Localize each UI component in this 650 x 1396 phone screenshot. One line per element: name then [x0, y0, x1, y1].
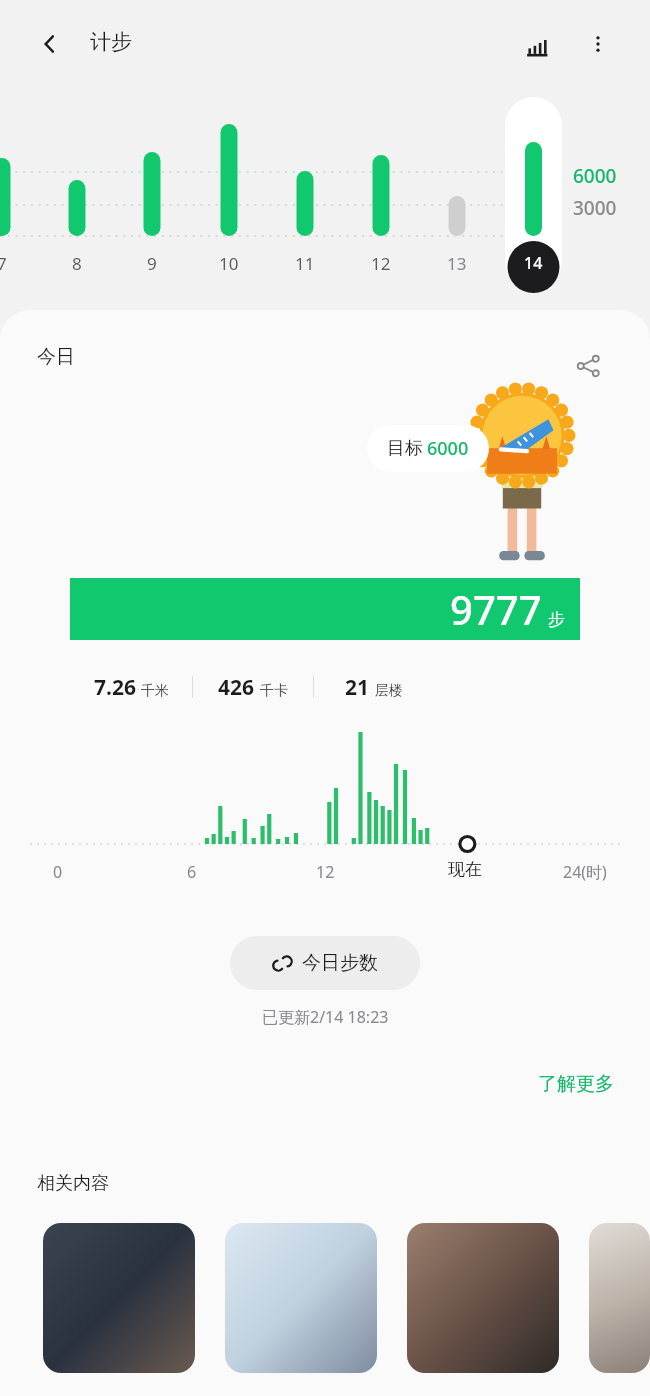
staticText: 14: [524, 252, 543, 274]
button[interactable]: Workout video 4: [589, 1223, 650, 1373]
staticText: 6: [187, 861, 197, 883]
button[interactable]: Trends chart: [513, 20, 561, 68]
staticText: 8: [72, 252, 82, 275]
staticText: 了解更多: [538, 1072, 614, 1096]
button[interactable]: 目标: [367, 425, 489, 472]
staticText: 7.26: [94, 673, 136, 702]
staticText: 12: [371, 252, 391, 275]
staticText: 9777: [450, 582, 542, 636]
staticText: 步: [548, 609, 565, 630]
staticText: 9: [147, 252, 157, 275]
staticText: 24(时): [563, 861, 607, 883]
staticText: 相关内容: [37, 1172, 109, 1195]
button[interactable]: Share: [560, 338, 616, 394]
staticText: 千卡: [260, 682, 288, 700]
staticText: 今日步数: [302, 951, 378, 975]
staticText: 426: [218, 673, 255, 702]
button[interactable]: 9777: [70, 578, 580, 640]
button[interactable]: 了解更多: [502, 1066, 650, 1102]
staticText: 13: [447, 252, 467, 275]
staticText: 10: [219, 252, 239, 275]
staticText: 今日: [37, 345, 75, 369]
staticText: 已更新2/14 18:23: [262, 1006, 389, 1028]
staticText: 3000: [573, 195, 617, 221]
staticText: 12: [316, 861, 335, 883]
staticText: 层楼: [375, 682, 403, 700]
staticText: 6000: [427, 436, 469, 461]
staticText: 计步: [90, 29, 132, 55]
staticText: 7: [0, 252, 7, 275]
staticText: 千米: [141, 682, 169, 700]
staticText: 6000: [573, 163, 617, 189]
button[interactable]: Back: [26, 20, 74, 68]
staticText: 目标: [387, 437, 423, 460]
button[interactable]: Workout video 1: [43, 1223, 195, 1373]
staticText: 21: [345, 673, 370, 702]
button[interactable]: More options: [574, 20, 622, 68]
button[interactable]: Body Blast video: [407, 1223, 559, 1373]
staticText: 0: [53, 861, 63, 883]
button[interactable]: Workout video 2: [225, 1223, 377, 1373]
button[interactable]: 今日步数: [230, 936, 420, 990]
staticText: 现在: [448, 859, 482, 880]
staticText: 11: [295, 252, 315, 275]
